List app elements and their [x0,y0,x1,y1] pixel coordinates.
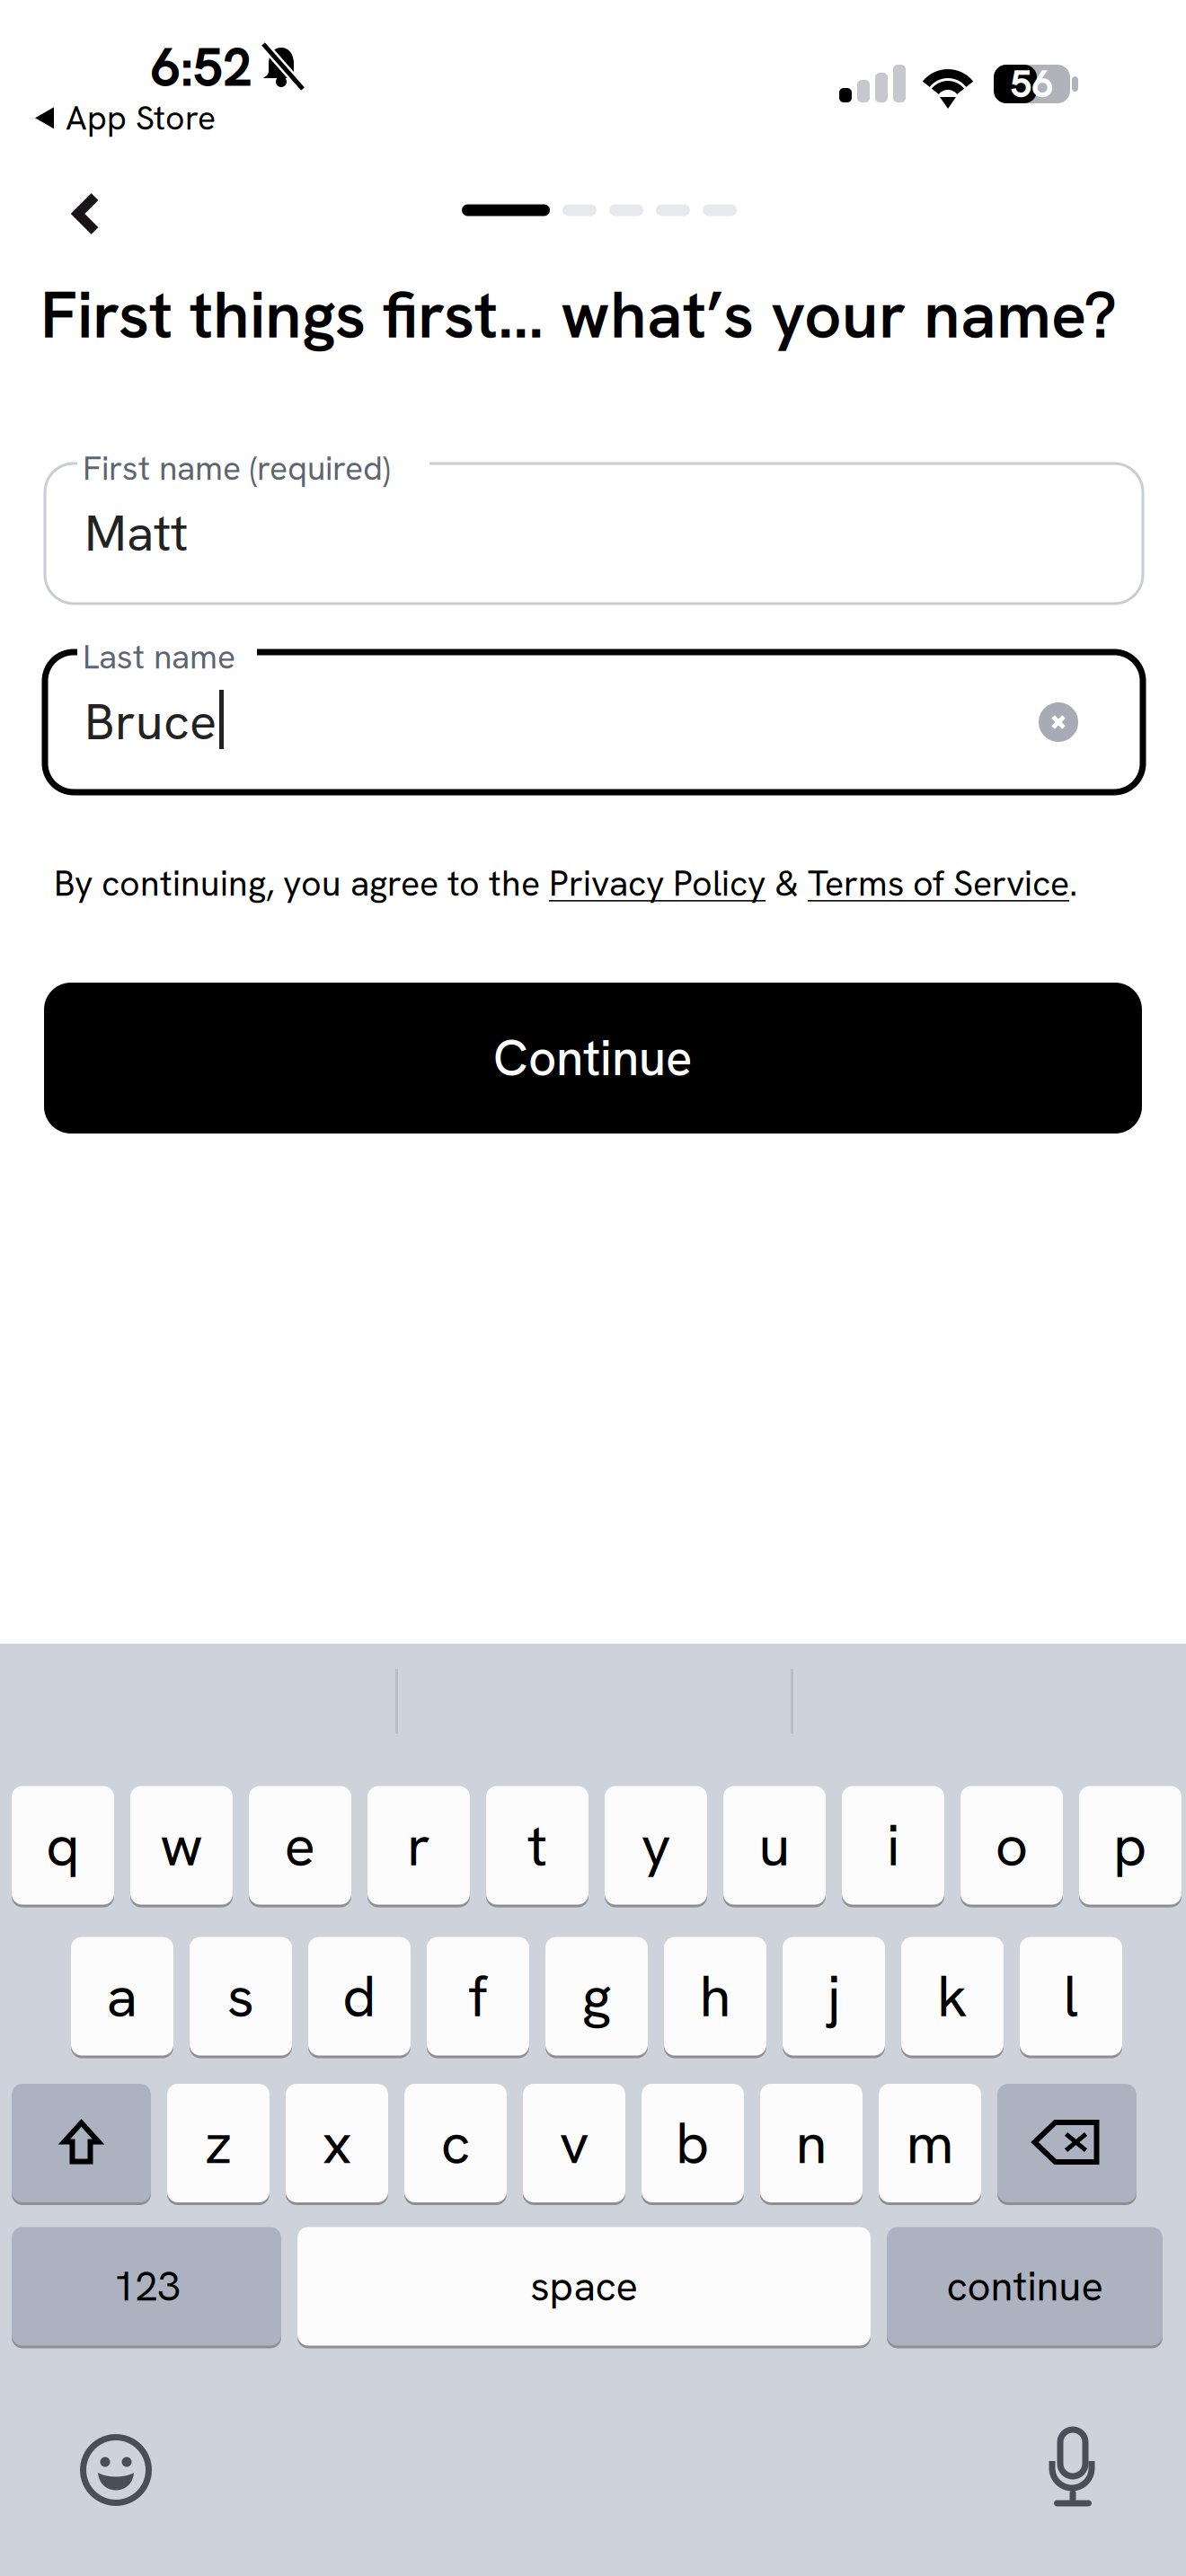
staticText: a [106,1959,138,2034]
button[interactable]: t [486,1785,589,1906]
button[interactable]: e [249,1785,351,1906]
staticText: First things first... what’s your name? [40,272,1117,357]
staticText: c [441,2106,470,2181]
button[interactable]: d [308,1936,411,2057]
button[interactable]: n [760,2082,863,2204]
staticText: s [227,1959,254,2034]
staticText: b [676,2106,710,2181]
button[interactable]: Shift [12,2080,151,2206]
staticText: w [160,1808,203,1883]
button[interactable]: space [297,2226,871,2347]
button[interactable]: 123 [12,2226,281,2347]
staticText: g [582,1959,611,2034]
staticText: Continue [493,1026,693,1090]
staticText: p [1113,1808,1147,1883]
staticText: App Store [66,96,216,140]
button[interactable]: q [12,1785,114,1906]
staticText: e [284,1808,316,1883]
button[interactable]: z [167,2082,270,2204]
button[interactable]: y [605,1785,707,1906]
button[interactable]: h [664,1936,766,2057]
staticText: 123 [113,2260,180,2313]
staticText: q [46,1808,80,1883]
staticText: h [699,1959,731,2034]
staticText: Last name [83,635,235,679]
button[interactable]: k [901,1936,1004,2057]
button[interactable]: Back [41,169,131,259]
button[interactable]: x [286,2082,388,2204]
button[interactable]: u [723,1785,826,1906]
button[interactable]: m [879,2082,981,2204]
staticText: u [759,1808,790,1883]
staticText: y [641,1808,671,1883]
button[interactable]: Continue [44,983,1142,1134]
staticText: 6:52 [151,33,252,102]
button[interactable]: Delete [997,2080,1137,2206]
staticText: z [205,2106,232,2181]
staticText: First name (required) [83,446,390,490]
button[interactable]: Clear text [1031,695,1085,749]
button[interactable]: l [1020,1936,1122,2057]
button[interactable]: p [1079,1785,1182,1906]
button[interactable]: w [130,1785,233,1906]
button[interactable]: App Store [31,93,219,143]
button[interactable]: b [642,2082,744,2204]
staticText: i [887,1808,899,1883]
button[interactable]: f [427,1936,529,2057]
button[interactable]: continue [887,2226,1163,2347]
staticText: f [469,1959,487,2034]
staticText: v [559,2106,589,2181]
staticText: continue [947,2260,1103,2313]
staticText: Matt [84,500,188,566]
staticText: o [995,1808,1028,1883]
staticText: l [1063,1959,1079,2034]
staticText: r [407,1808,430,1883]
staticText: k [937,1959,968,2034]
staticText: m [906,2106,954,2181]
button[interactable]: r [367,1785,470,1906]
staticText: j [828,1959,840,2034]
button[interactable]: i [842,1785,944,1906]
button[interactable]: g [545,1936,648,2057]
button[interactable]: s [190,1936,292,2057]
button[interactable]: o [960,1785,1063,1906]
staticText: d [342,1959,376,2034]
staticText: t [527,1808,547,1883]
staticText: By continuing, you agree to the Privacy … [54,860,1077,907]
button[interactable]: v [523,2082,625,2204]
button[interactable]: c [404,2082,507,2204]
button[interactable]: Dictation [1030,2414,1116,2522]
button[interactable]: j [783,1936,885,2057]
staticText: n [796,2106,827,2181]
button[interactable]: Emoji keyboard [73,2427,159,2513]
staticText: x [322,2106,352,2181]
staticText: 56 [1010,59,1053,109]
staticText: Bruce [84,689,217,754]
button[interactable]: a [71,1936,173,2057]
staticText: space [531,2260,637,2313]
